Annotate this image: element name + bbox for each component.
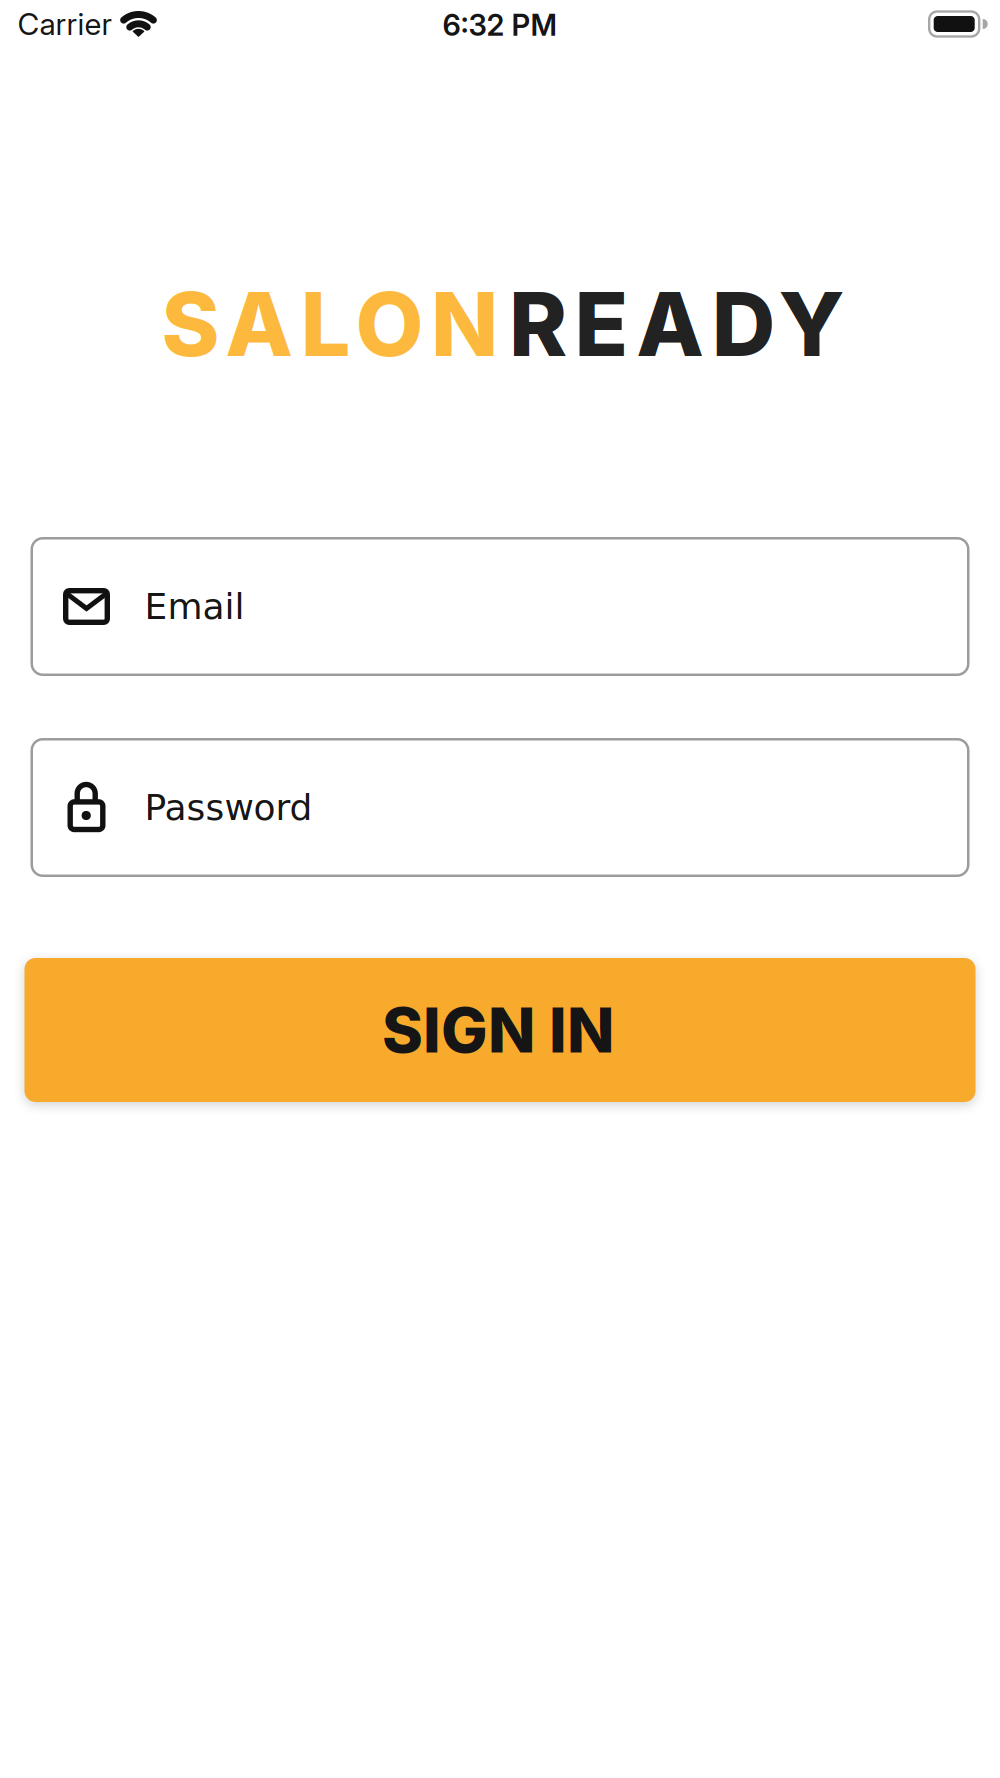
button[interactable]: SIGN IN — [24, 958, 975, 1102]
staticText: Carrier — [17, 6, 112, 42]
staticText: READY — [509, 271, 844, 377]
staticText: SIGN IN — [382, 992, 614, 1067]
button[interactable]: Email — [30, 537, 969, 676]
staticText: Password — [144, 786, 312, 828]
staticText: 6:32 PM — [442, 7, 557, 43]
staticText: Email — [144, 585, 244, 627]
staticText: SALON — [162, 271, 498, 377]
button[interactable]: Password — [30, 738, 969, 877]
